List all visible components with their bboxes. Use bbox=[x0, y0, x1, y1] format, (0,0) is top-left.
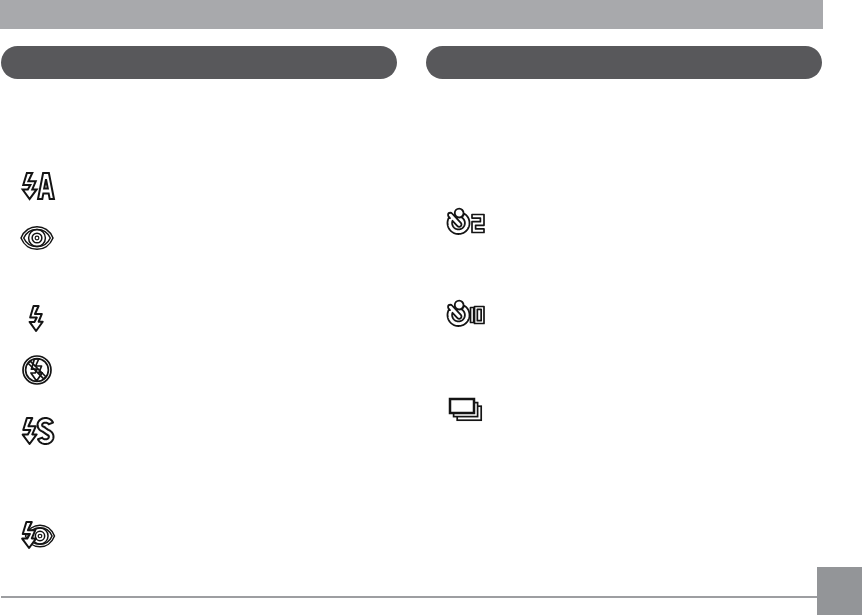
button[interactable]: Flash mode bbox=[1, 46, 397, 79]
button[interactable]: Drive mode bbox=[426, 46, 822, 79]
